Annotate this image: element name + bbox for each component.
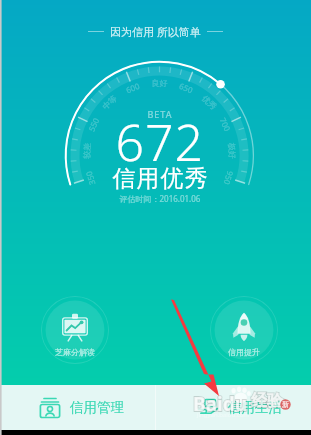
button[interactable]: 信用提升 xyxy=(210,296,278,364)
staticText: 信用生活 xyxy=(228,399,282,416)
button[interactable]: 芝麻分解读 xyxy=(41,296,109,364)
staticText: 信用提升 xyxy=(228,347,260,357)
button[interactable]: 信用管理 xyxy=(0,385,155,430)
button[interactable]: 信用生活 xyxy=(156,385,311,430)
staticText: 芝麻分解读 xyxy=(55,347,95,357)
staticText: 信用管理 xyxy=(70,399,124,416)
staticText: 因为信用 所以简单 xyxy=(110,24,201,39)
